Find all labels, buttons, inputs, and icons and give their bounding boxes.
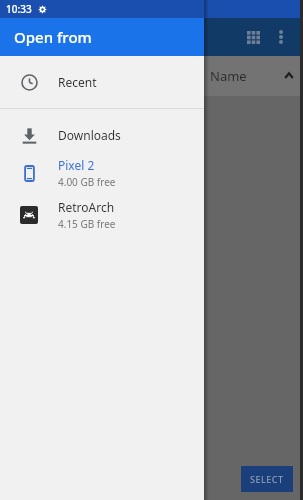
staticText: SELECT — [250, 473, 284, 485]
staticText: 4.00 GB free — [58, 175, 116, 189]
staticText: Open from — [14, 27, 92, 47]
button[interactable]: RetroArch — [0, 194, 204, 236]
button[interactable]: Pixel 2 — [0, 152, 204, 194]
staticText: Pixel 2 — [58, 157, 95, 173]
staticText: RetroArch — [58, 199, 115, 215]
button[interactable]: Name — [210, 56, 298, 96]
staticText: Recent — [58, 74, 97, 90]
staticText: Name — [210, 67, 247, 85]
button[interactable]: Downloads — [0, 118, 204, 152]
staticText: 4.15 GB free — [58, 217, 116, 231]
button[interactable]: SELECT — [241, 466, 293, 492]
button[interactable]: Recent — [0, 56, 204, 108]
staticText: 10:33 — [6, 2, 32, 16]
button[interactable]: More options — [268, 24, 294, 50]
button[interactable]: Grid view — [238, 22, 268, 52]
staticText: Downloads — [58, 127, 121, 143]
